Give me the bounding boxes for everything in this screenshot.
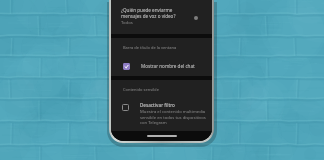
staticText: Desactivar filtro [140,102,175,108]
staticText: Barra de título de la ventana [123,45,177,50]
button[interactable]: Desactivar filtro [111,102,212,125]
staticText: Todos [121,20,133,26]
other: Opción seleccionada [194,16,198,20]
button[interactable]: ¿Quién puede enviarme [111,0,212,34]
staticText: Mostrar nombre del chat [141,63,195,69]
staticText: ¿Quién puede enviarme [121,7,173,13]
staticText: Muestra el contenido multimedia sensible… [140,109,206,125]
staticText: mensajes de voz o vídeo? [121,13,176,19]
button[interactable]: Mostrar nombre del chat [111,56,212,76]
staticText: Contenido sensible [123,87,159,92]
